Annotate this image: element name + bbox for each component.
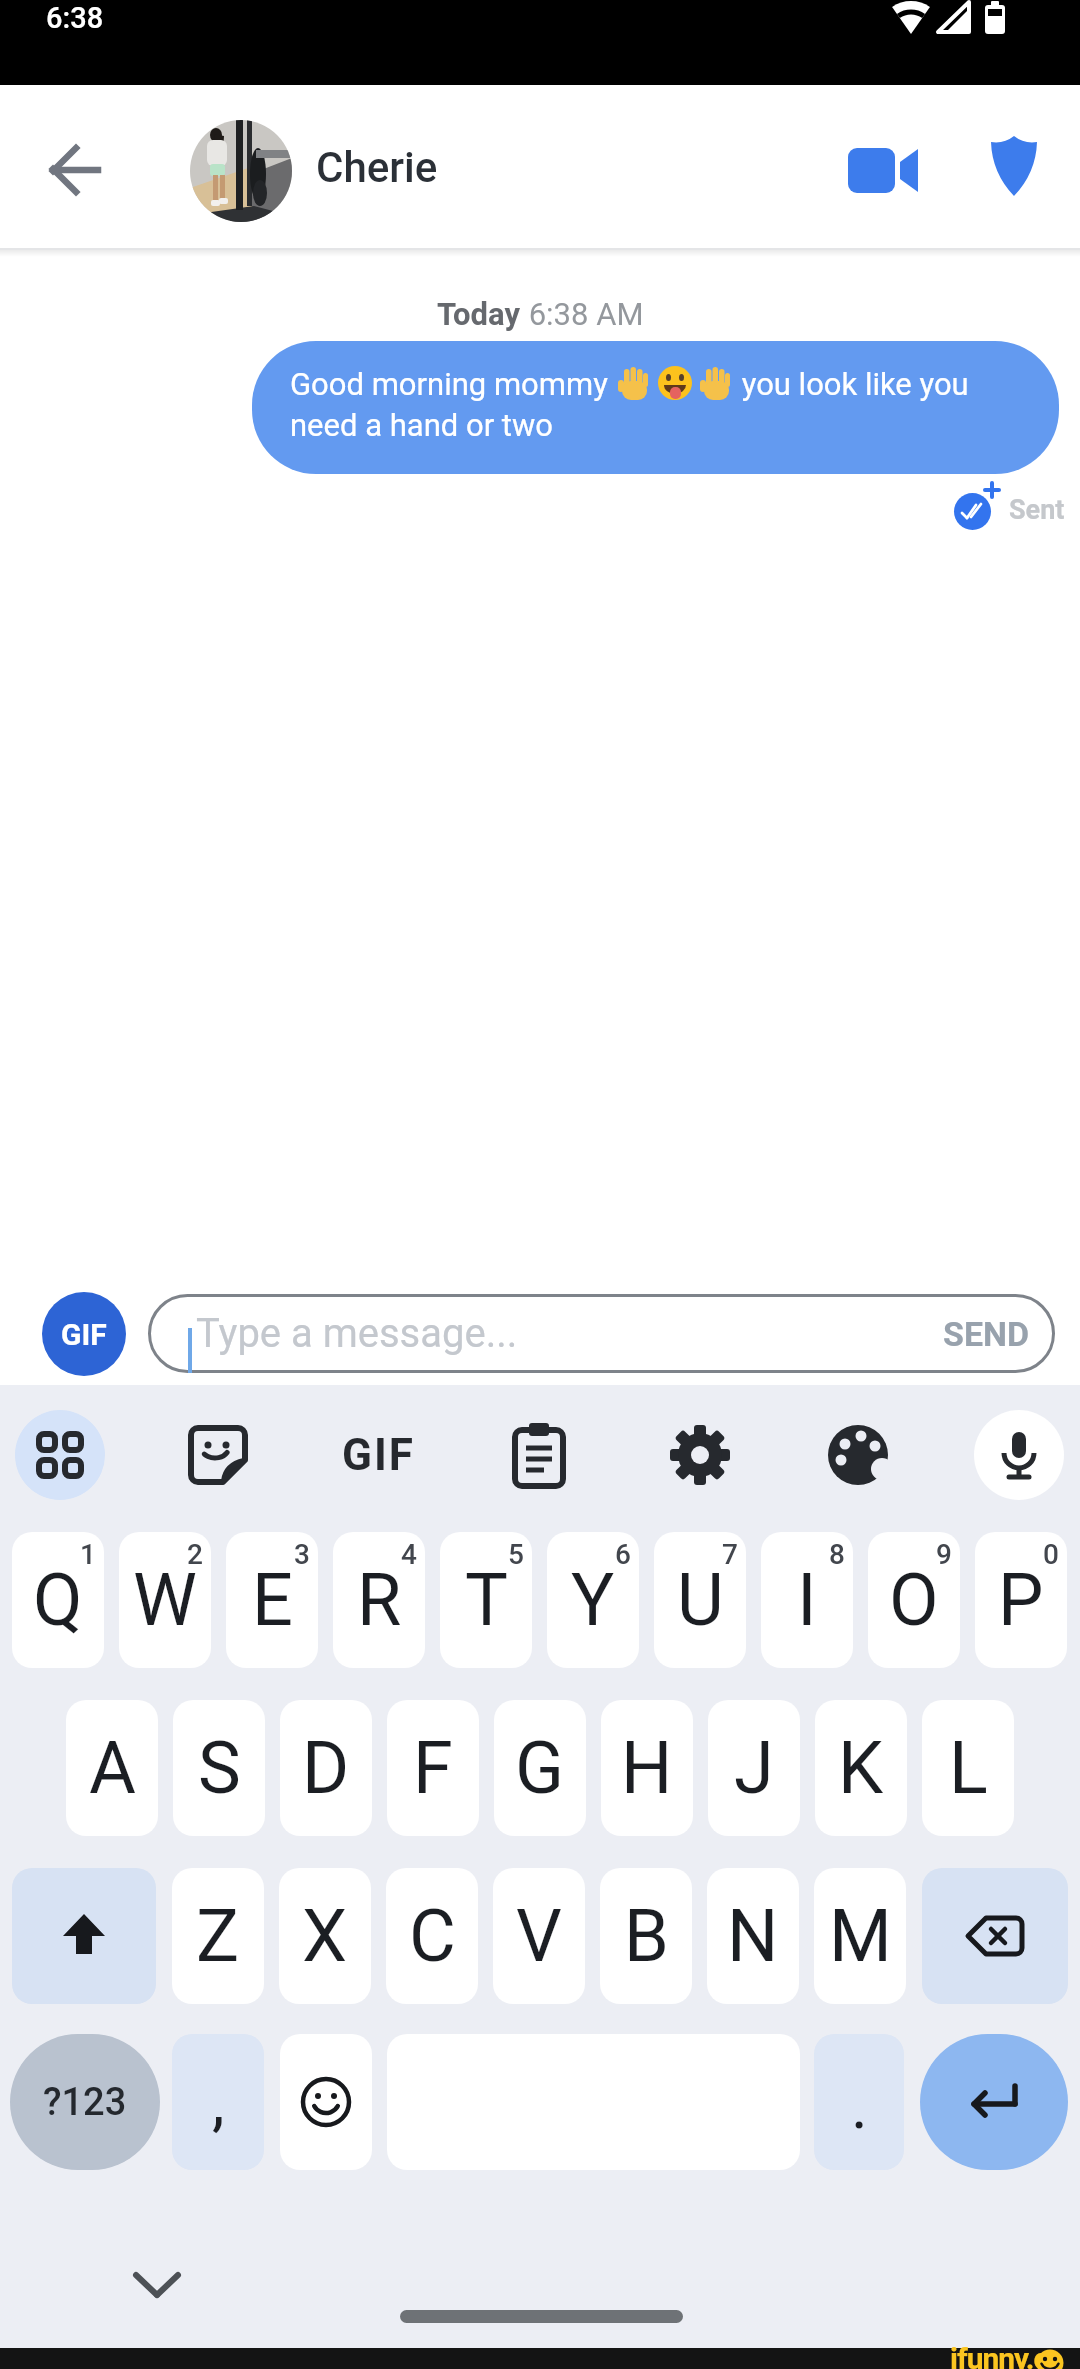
- staticText: S: [198, 1726, 241, 1810]
- staticText: Y: [571, 1558, 615, 1642]
- staticText: W: [133, 1558, 197, 1642]
- button[interactable]: [504, 1420, 574, 1490]
- button[interactable]: G: [494, 1700, 586, 1836]
- button[interactable]: H: [601, 1700, 693, 1836]
- button[interactable]: [190, 120, 292, 222]
- button[interactable]: I: [761, 1532, 853, 1668]
- staticText: 4: [401, 1538, 417, 1571]
- button[interactable]: [922, 1868, 1068, 2004]
- button[interactable]: [974, 1410, 1064, 1500]
- staticText: T: [465, 1558, 508, 1642]
- staticText: V: [516, 1894, 562, 1978]
- button[interactable]: [15, 1410, 105, 1500]
- staticText: J: [734, 1726, 774, 1810]
- button[interactable]: R: [333, 1532, 425, 1668]
- button[interactable]: Z: [172, 1868, 264, 2004]
- button[interactable]: A: [66, 1700, 158, 1836]
- staticText: 6:38: [46, 1, 104, 35]
- staticText: Sent: [1009, 494, 1065, 526]
- button[interactable]: [823, 1420, 893, 1490]
- staticText: .: [851, 2069, 868, 2144]
- button[interactable]: N: [707, 1868, 799, 2004]
- staticText: you look like you: [734, 366, 969, 402]
- staticText: K: [838, 1726, 884, 1810]
- staticText: L: [949, 1726, 988, 1810]
- button[interactable]: T: [440, 1532, 532, 1668]
- button[interactable]: Q: [12, 1532, 104, 1668]
- staticText: E: [252, 1558, 293, 1642]
- button[interactable]: J: [708, 1700, 800, 1836]
- button[interactable]: E: [226, 1532, 318, 1668]
- button[interactable]: Type a message...: [148, 1294, 1055, 1373]
- staticText: M: [829, 1894, 892, 1978]
- button[interactable]: W: [119, 1532, 211, 1668]
- staticText: X: [302, 1894, 348, 1978]
- button[interactable]: ,: [172, 2034, 264, 2170]
- staticText: G: [515, 1726, 565, 1810]
- button[interactable]: B: [600, 1868, 692, 2004]
- staticText: A: [89, 1726, 136, 1810]
- button[interactable]: V: [493, 1868, 585, 2004]
- staticText: Good morning mommy: [290, 366, 616, 402]
- button[interactable]: [280, 2034, 372, 2170]
- staticText: GIF: [61, 1317, 107, 1352]
- staticText: Cherie: [316, 143, 438, 192]
- button[interactable]: [12, 1868, 156, 2004]
- button[interactable]: F: [387, 1700, 479, 1836]
- button[interactable]: [112, 2245, 202, 2325]
- staticText: 3: [294, 1538, 310, 1571]
- staticText: F: [413, 1726, 453, 1810]
- button[interactable]: [183, 1420, 253, 1490]
- staticText: B: [624, 1894, 669, 1978]
- staticText: H: [621, 1726, 673, 1810]
- staticText: ifunny.c: [950, 2341, 1049, 2369]
- staticText: 1: [80, 1538, 96, 1571]
- button[interactable]: P: [975, 1532, 1067, 1668]
- staticText: 9: [936, 1538, 952, 1571]
- staticText: 6: [615, 1538, 631, 1571]
- button[interactable]: GIF: [318, 1420, 438, 1490]
- staticText: D: [302, 1726, 350, 1810]
- staticText: 8: [829, 1538, 845, 1571]
- staticText: 5: [508, 1538, 524, 1571]
- staticText: Type a message...: [196, 1310, 518, 1357]
- button[interactable]: [966, 125, 1062, 215]
- staticText: 0: [1043, 1538, 1059, 1571]
- button[interactable]: U: [654, 1532, 746, 1668]
- button[interactable]: Y: [547, 1532, 639, 1668]
- staticText: I: [797, 1558, 817, 1642]
- staticText: SEND: [943, 1314, 1030, 1354]
- button[interactable]: X: [279, 1868, 371, 2004]
- staticText: 2: [187, 1538, 203, 1571]
- button[interactable]: .: [814, 2034, 904, 2170]
- button[interactable]: C: [386, 1868, 478, 2004]
- staticText: 7: [722, 1538, 738, 1571]
- button[interactable]: GIF: [42, 1292, 126, 1376]
- button[interactable]: Good morning mommy: [252, 341, 1059, 474]
- button[interactable]: ?123: [10, 2034, 160, 2170]
- button[interactable]: M: [814, 1868, 906, 2004]
- staticText: GIF: [342, 1429, 415, 1481]
- button[interactable]: K: [815, 1700, 907, 1836]
- staticText: ,: [212, 2065, 225, 2140]
- staticText: P: [998, 1558, 1044, 1642]
- button[interactable]: [665, 1420, 735, 1490]
- staticText: C: [409, 1894, 456, 1978]
- staticText: ?123: [43, 2080, 127, 2125]
- staticText: need a hand or two: [290, 407, 553, 443]
- staticText: Today: [437, 296, 521, 332]
- button[interactable]: [25, 120, 125, 220]
- button[interactable]: O: [868, 1532, 960, 1668]
- staticText: Z: [196, 1894, 240, 1978]
- staticText: N: [727, 1894, 779, 1978]
- staticText: U: [677, 1558, 724, 1642]
- staticText: 6:38 AM: [521, 296, 644, 332]
- staticText: O: [889, 1558, 939, 1642]
- button[interactable]: L: [922, 1700, 1014, 1836]
- button[interactable]: [830, 132, 940, 208]
- button[interactable]: S: [173, 1700, 265, 1836]
- button[interactable]: [920, 2034, 1068, 2170]
- staticText: R: [357, 1558, 402, 1642]
- button[interactable]: D: [280, 1700, 372, 1836]
